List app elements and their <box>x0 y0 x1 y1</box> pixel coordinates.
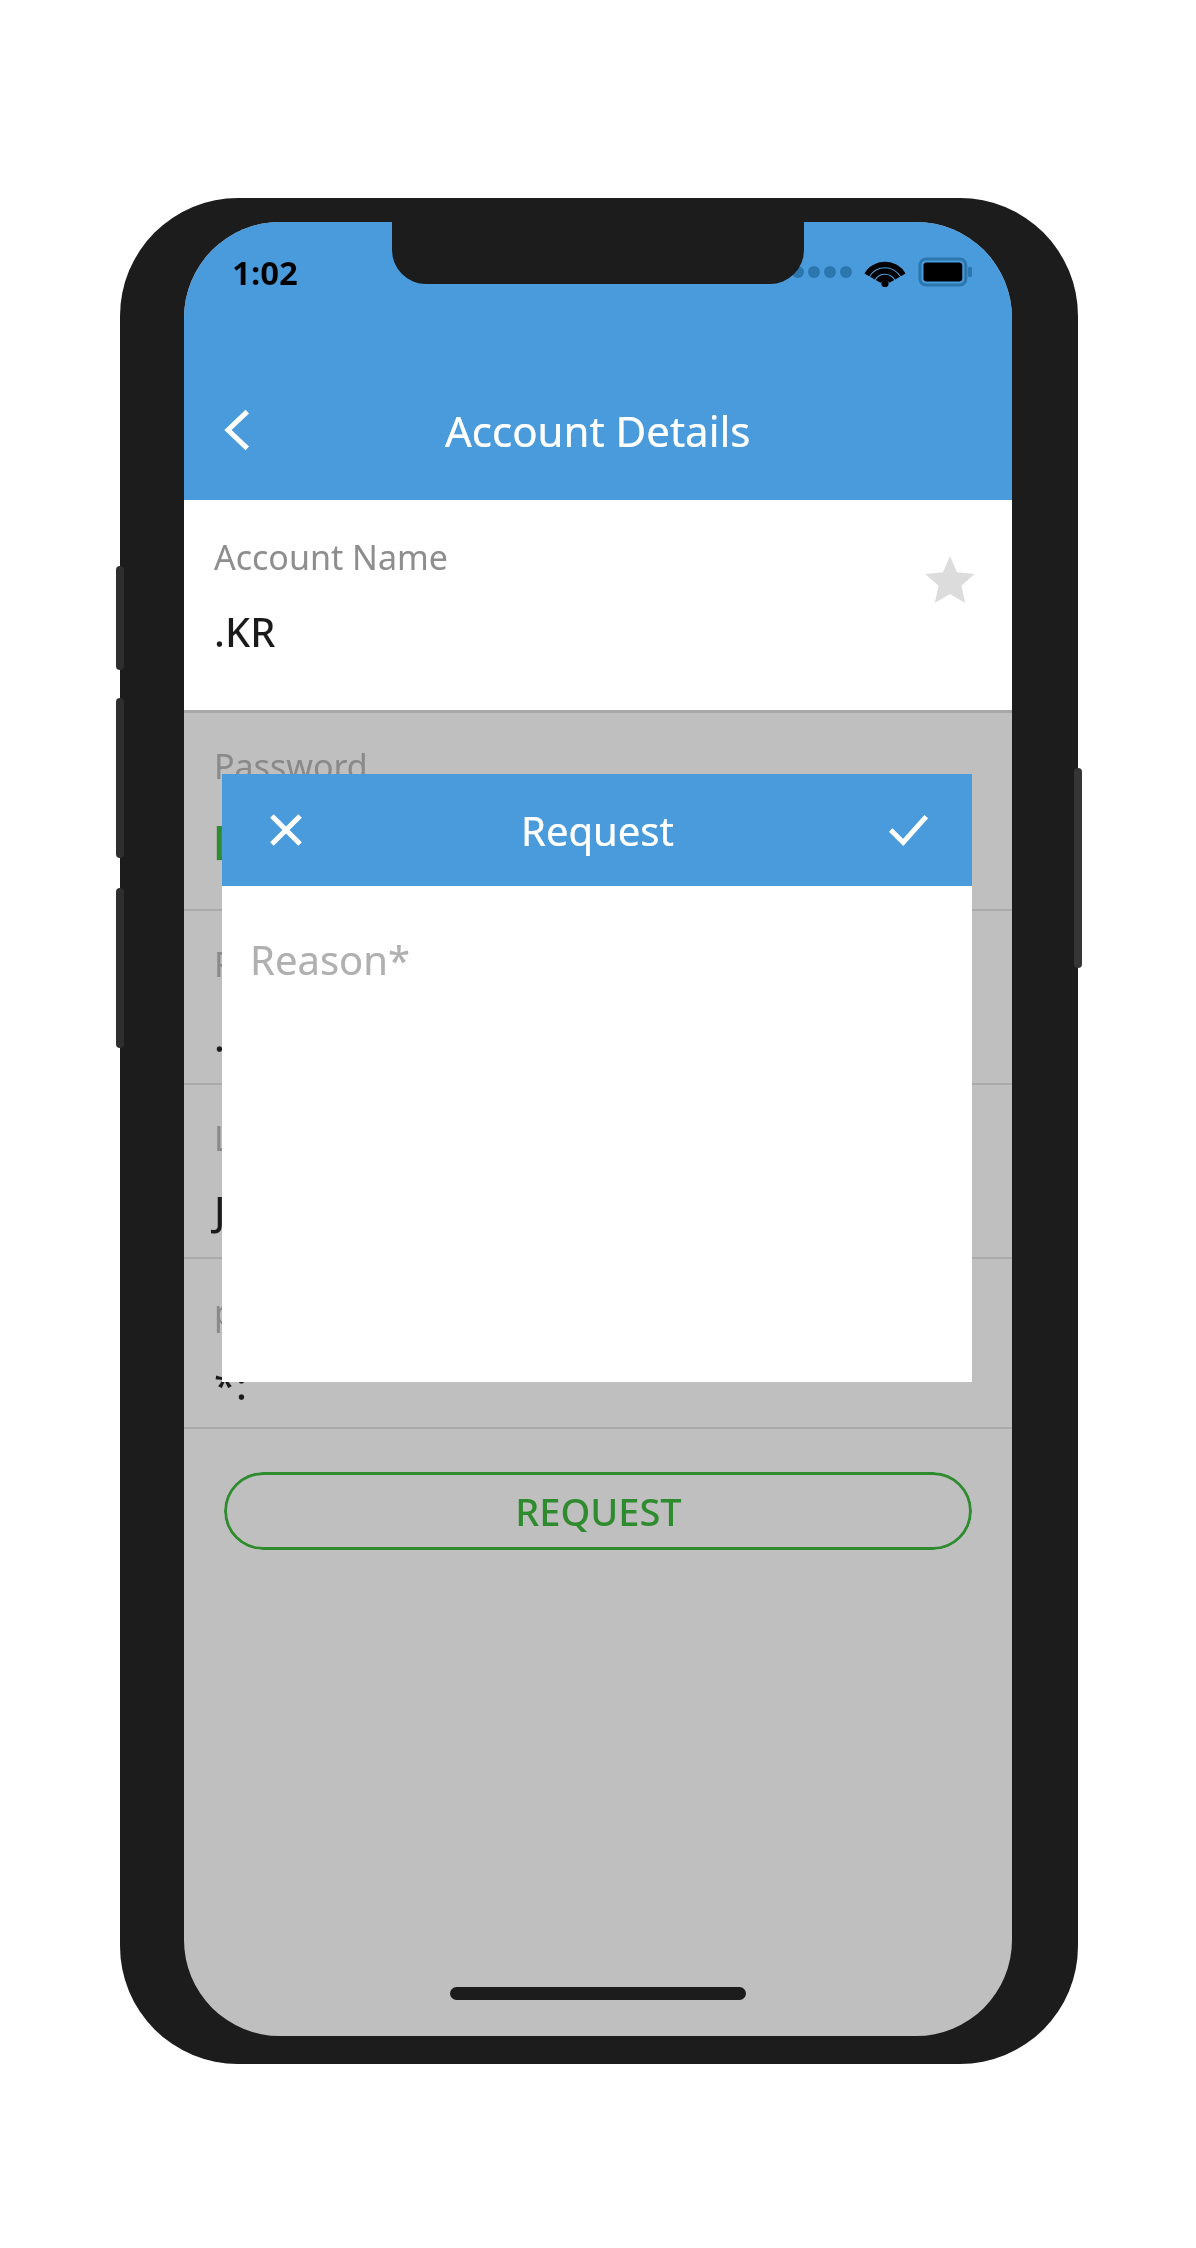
staticText: Re <box>214 941 255 987</box>
staticText: Password <box>214 743 368 789</box>
staticText: Account Details <box>445 402 751 459</box>
staticText: Account Name <box>214 534 448 580</box>
staticText: [Request] <box>214 811 404 865</box>
button[interactable]: La <box>184 1085 1012 1257</box>
staticText: La <box>214 1115 251 1161</box>
staticText: pw <box>214 1289 261 1335</box>
staticText: .F <box>214 1009 246 1063</box>
staticText: 1:02 <box>232 250 298 295</box>
staticText: *: <box>214 1357 247 1411</box>
button[interactable]: Back <box>184 360 294 500</box>
staticText: J. <box>214 1183 237 1237</box>
button[interactable]: Password <box>184 713 1012 909</box>
button[interactable]: Close <box>238 782 334 878</box>
staticText: .KR <box>214 604 276 658</box>
button[interactable]: pw <box>184 1259 1012 1427</box>
button[interactable]: Re <box>184 911 1012 1083</box>
button[interactable]: Confirm <box>860 782 956 878</box>
button[interactable]: Show password <box>910 773 986 849</box>
staticText: Request <box>521 803 674 857</box>
staticText: REQUEST <box>515 1485 682 1537</box>
button[interactable]: Favourite <box>916 548 984 616</box>
button[interactable]: Reason* <box>222 886 972 1382</box>
button[interactable]: Account Name <box>184 500 1012 710</box>
button[interactable]: REQUEST <box>224 1472 972 1550</box>
staticText: Reason* <box>250 932 410 986</box>
